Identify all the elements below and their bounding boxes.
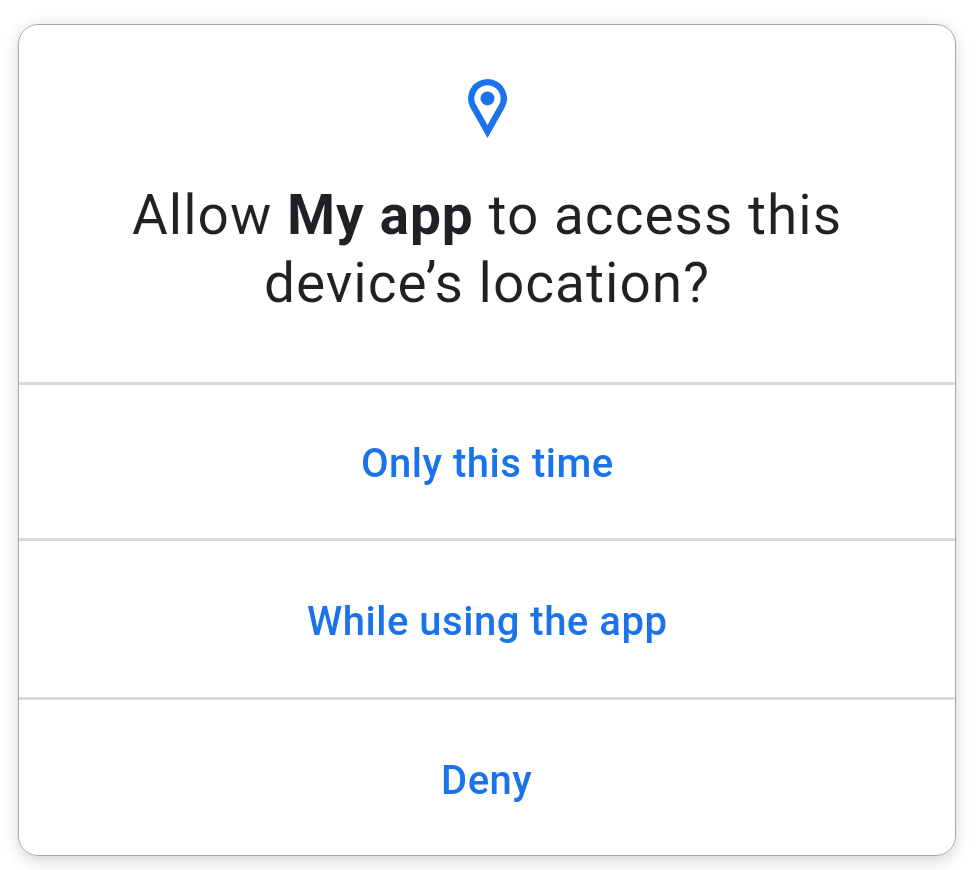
staticText: Deny: [441, 757, 533, 804]
button[interactable]: Deny: [18, 700, 956, 856]
button[interactable]: Only this time: [18, 385, 956, 538]
staticText: Only this time: [361, 440, 614, 487]
button[interactable]: While using the app: [18, 541, 956, 697]
staticText: Allow My app to access this device’s loc…: [18, 183, 956, 315]
staticText: While using the app: [307, 598, 668, 645]
